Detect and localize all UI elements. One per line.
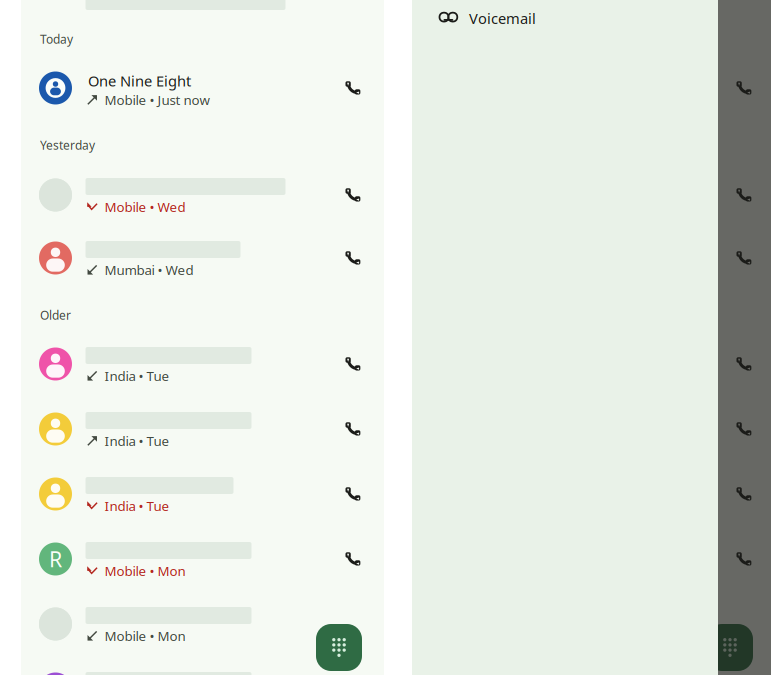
button[interactable] — [21, 657, 384, 675]
staticText: India • Tue — [104, 432, 169, 450]
button[interactable]: Mobile • Wed — [21, 163, 384, 227]
button[interactable]: Open dial pad — [707, 624, 753, 671]
button[interactable]: India • Tue — [412, 332, 771, 396]
button[interactable]: Mobile • Mon — [21, 592, 384, 656]
button[interactable]: Open dial pad — [316, 624, 362, 671]
staticText: Voicemail — [469, 8, 536, 28]
staticText: R — [49, 545, 62, 573]
button[interactable]: India • Tue — [412, 462, 771, 526]
staticText: India • Tue — [104, 367, 169, 385]
staticText: Mumbai • Wed — [104, 261, 193, 279]
button[interactable]: India • Tue — [21, 397, 384, 461]
button[interactable]: Mumbai • Wed — [21, 226, 384, 290]
staticText: Older — [40, 307, 71, 323]
button[interactable]: India • Tue — [412, 397, 771, 461]
button[interactable]: India • Tue — [21, 332, 384, 396]
button[interactable] — [412, 657, 771, 675]
staticText: Mobile • Mon — [104, 627, 185, 645]
button[interactable]: R — [21, 527, 384, 591]
staticText: Mobile • Just now — [104, 91, 209, 109]
button[interactable]: India • Tue — [21, 462, 384, 526]
button[interactable]: One Nine Eight — [412, 56, 771, 120]
button[interactable]: Mumbai • Wed — [412, 226, 771, 290]
button[interactable]: One Nine Eight — [21, 56, 384, 120]
staticText: India • Tue — [104, 497, 169, 515]
staticText: Mobile • Wed — [104, 198, 185, 216]
staticText: Yesterday — [40, 137, 95, 153]
staticText: One Nine Eight — [88, 71, 191, 90]
button[interactable]: Mobile • Mon — [412, 592, 771, 656]
staticText: Today — [40, 31, 73, 47]
staticText: Mobile • Mon — [104, 562, 185, 580]
button[interactable]: R — [412, 527, 771, 591]
button[interactable]: Mobile • Wed — [412, 163, 771, 227]
button[interactable]: Voicemail — [412, 0, 718, 40]
